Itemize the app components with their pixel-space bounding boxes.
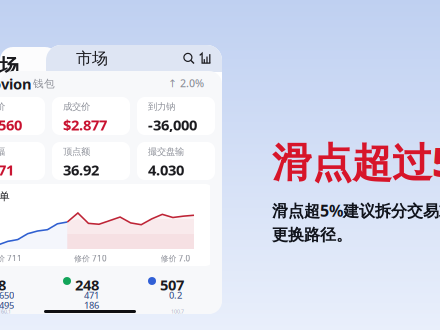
- staticText: 撮交盘输: [148, 146, 184, 157]
- staticText: 滑点超5%建议拆分交易或: [272, 200, 440, 221]
- staticText: 市场: [76, 49, 108, 68]
- staticText: 650: [0, 289, 14, 301]
- button[interactable]: 507: [148, 275, 233, 311]
- staticText: 修价 710: [74, 253, 107, 264]
- staticText: 2.071: [0, 160, 14, 179]
- staticText: 248: [75, 275, 99, 294]
- staticText: 钱包: [33, 77, 55, 90]
- button[interactable]: 248: [63, 275, 148, 311]
- staticText: 100.7: [171, 308, 184, 315]
- staticText: 186: [84, 299, 99, 311]
- staticText: 场: [0, 54, 19, 79]
- button[interactable]: 涨跌幅: [0, 142, 45, 180]
- staticText: 36.92: [63, 160, 99, 179]
- staticText: 修价 7.0: [160, 253, 190, 264]
- staticText: 471: [84, 289, 99, 301]
- staticText: 到力钠: [148, 101, 175, 112]
- staticText: 495: [0, 299, 14, 311]
- button[interactable]: 成交价: [52, 97, 130, 135]
- button[interactable]: 撮交盘输: [137, 142, 215, 180]
- button[interactable]: 38: [0, 275, 63, 311]
- staticText: 成交价: [63, 101, 90, 112]
- staticText: 0.2: [169, 289, 182, 301]
- button[interactable]: 行情图表: [197, 50, 213, 66]
- staticText: 507: [160, 275, 184, 294]
- staticText: $2.560: [0, 115, 22, 134]
- staticText: 挂单: [0, 190, 10, 203]
- staticText: 38: [0, 275, 6, 294]
- staticText: $2.877: [63, 115, 107, 134]
- staticText: ovion: [0, 74, 32, 93]
- staticText: ↑ 2.0%: [168, 76, 204, 90]
- staticText: 顶点额: [63, 146, 90, 157]
- staticText: 4.030: [148, 160, 184, 179]
- staticText: 60.1: [1, 308, 11, 315]
- staticText: 滑点超过5%: [272, 135, 440, 188]
- button[interactable]: 到力钠: [137, 97, 215, 135]
- staticText: 最新价: [0, 101, 5, 112]
- button[interactable]: 顶点额: [52, 142, 130, 180]
- staticText: -36,000: [148, 115, 197, 134]
- staticText: 更换路径。: [272, 225, 352, 245]
- staticText: 涨跌幅: [0, 146, 5, 157]
- button[interactable]: 搜索: [181, 50, 197, 66]
- staticText: 修价 711: [0, 253, 22, 264]
- button[interactable]: 最新价: [0, 97, 45, 135]
